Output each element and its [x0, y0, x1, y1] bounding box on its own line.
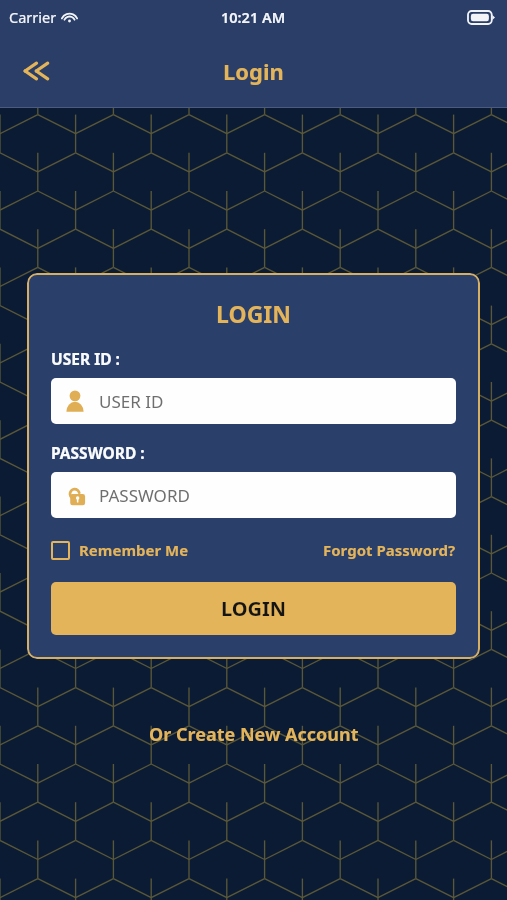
staticText: LOGIN — [51, 298, 456, 329]
staticText: Or Create New Account — [149, 722, 359, 747]
button[interactable]: USER ID — [51, 378, 456, 424]
button[interactable]: Or Create New Account — [139, 716, 369, 753]
button[interactable]: Back — [12, 47, 60, 95]
staticText: Login — [223, 56, 284, 86]
staticText: USER ID : — [51, 348, 120, 369]
button[interactable]: Forgot Password? — [323, 536, 456, 564]
staticText: 10:21 AM — [221, 7, 286, 27]
staticText: Carrier — [9, 7, 57, 27]
staticText: Forgot Password? — [323, 540, 456, 560]
button[interactable]: LOGIN — [51, 582, 456, 635]
staticText: Remember Me — [79, 540, 189, 560]
staticText: USER ID — [99, 390, 164, 413]
staticText: LOGIN — [221, 595, 287, 622]
staticText: PASSWORD — [99, 484, 190, 507]
staticText: PASSWORD : — [51, 442, 145, 463]
button[interactable]: PASSWORD — [51, 472, 456, 518]
button[interactable]: Remember Me — [51, 536, 189, 564]
